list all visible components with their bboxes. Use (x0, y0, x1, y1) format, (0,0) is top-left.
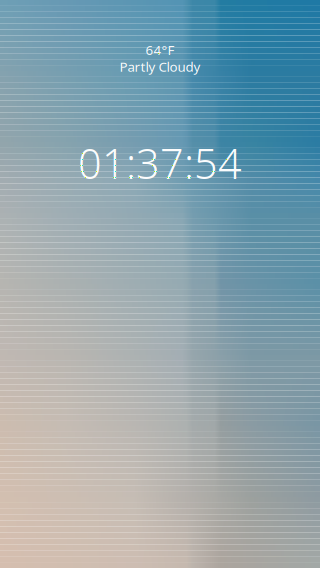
staticText: 64°F (145, 41, 174, 59)
staticText: Partly Cloudy (119, 58, 200, 75)
staticText: 01:37:54 (78, 135, 242, 190)
